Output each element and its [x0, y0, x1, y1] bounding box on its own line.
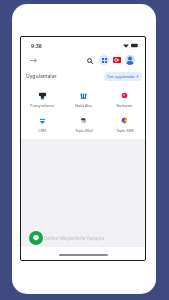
staticText: Pozisyonlarım	[30, 103, 54, 108]
button[interactable]: Language	[113, 57, 121, 63]
button[interactable]: Search	[84, 55, 95, 66]
staticText: CRM	[38, 128, 46, 133]
button[interactable]: Tüm uygulamalar	[104, 72, 142, 81]
button[interactable]: Exit	[27, 54, 39, 66]
staticText: Nakit Akış	[75, 103, 92, 108]
staticText: Uygulamalar	[26, 73, 57, 80]
staticText: Bonkasör	[116, 103, 133, 108]
button[interactable]: Bonkasör	[104, 91, 145, 108]
staticText: Tüm uygulamalar	[107, 74, 135, 79]
staticText: Toplu SMS	[116, 128, 134, 133]
button[interactable]: Pozisyonlarım	[21, 91, 63, 108]
staticText: Toplu Mail	[75, 128, 93, 133]
button[interactable]: Nakit Akış	[63, 91, 104, 108]
staticText: Online Müşterilerle Yazışma	[44, 235, 104, 241]
button[interactable]: CRM	[21, 116, 63, 133]
button[interactable]: Toplu SMS	[104, 116, 145, 133]
button[interactable]: Toplu Mail	[63, 116, 104, 133]
staticText: 9:38	[31, 42, 42, 49]
button[interactable]: Profile	[125, 55, 135, 65]
button[interactable]: Apps	[99, 55, 109, 65]
button[interactable]: WhatsApp	[29, 231, 43, 245]
